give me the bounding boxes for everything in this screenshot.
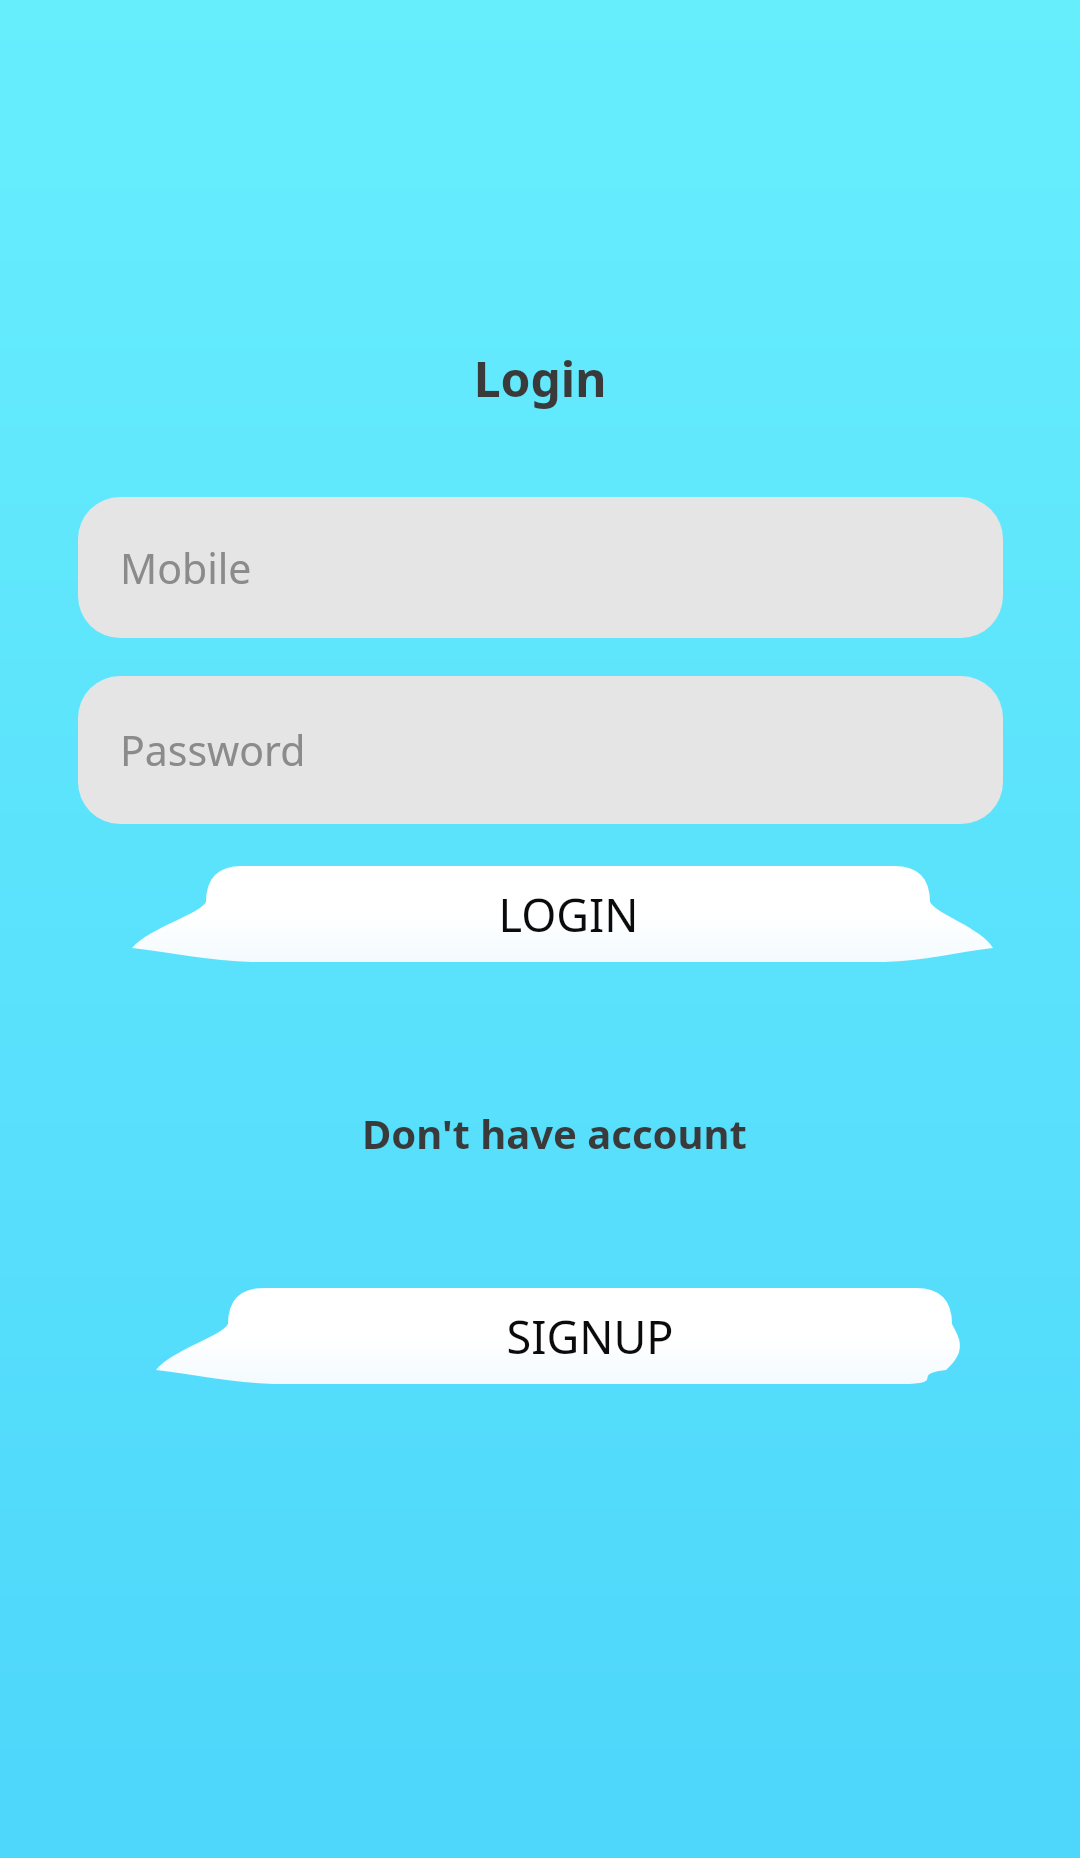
button[interactable]: LOGIN [124, 866, 1001, 1002]
staticText: Mobile [120, 540, 252, 596]
staticText: Don't have account [362, 1106, 747, 1160]
staticText: Login [0, 346, 1080, 411]
staticText: LOGIN [498, 884, 639, 945]
button[interactable]: Password [78, 676, 1003, 824]
button[interactable]: Mobile [78, 497, 1003, 638]
button[interactable]: SIGNUP [148, 1288, 960, 1424]
staticText: SIGNUP [506, 1306, 674, 1367]
staticText: Password [120, 722, 306, 778]
